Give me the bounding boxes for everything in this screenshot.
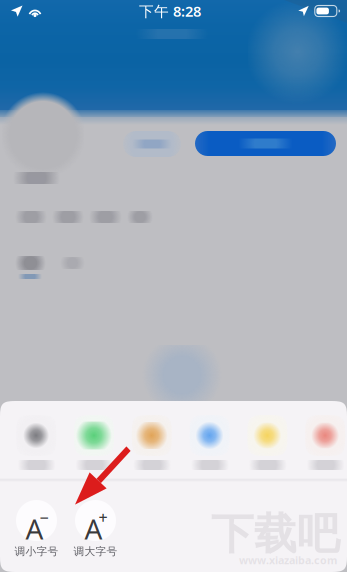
- staticText: −: [39, 507, 48, 528]
- button[interactable]: Share target: [123, 415, 181, 475]
- staticText: 调大字号: [73, 545, 117, 558]
- button[interactable]: Share target: [296, 415, 347, 475]
- staticText: 调小字号: [14, 545, 58, 558]
- button[interactable]: A: [16, 500, 57, 559]
- staticText: A: [84, 510, 102, 547]
- button[interactable]: Share target: [181, 415, 238, 475]
- staticText: +: [98, 507, 107, 528]
- staticText: A: [25, 510, 43, 547]
- button[interactable]: Share target: [7, 415, 65, 475]
- button[interactable]: Share target: [65, 415, 123, 475]
- button[interactable]: A: [75, 500, 116, 559]
- staticText: www.xiazaiba.com: [239, 553, 337, 567]
- staticText: 下午 8:28: [139, 1, 201, 21]
- button[interactable]: Share target: [238, 415, 296, 475]
- staticText: 下载吧: [211, 508, 340, 560]
